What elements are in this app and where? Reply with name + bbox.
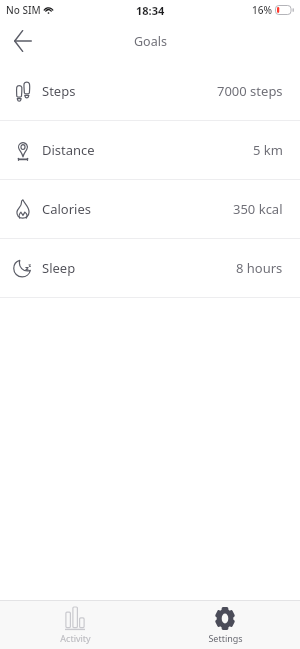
staticText: 350 kcal <box>233 200 283 218</box>
staticText: 18:34 <box>136 3 165 18</box>
button[interactable]: Back <box>4 22 42 60</box>
button[interactable]: Distance <box>0 121 300 179</box>
button[interactable]: Activity <box>0 601 150 649</box>
button[interactable]: Steps <box>0 62 300 120</box>
staticText: Distance <box>42 141 95 159</box>
button[interactable]: Sleep <box>0 239 300 297</box>
staticText: Steps <box>42 82 76 100</box>
staticText: 16% <box>252 3 272 17</box>
staticText: Activity <box>60 632 91 644</box>
staticText: Sleep <box>42 259 76 277</box>
staticText: Settings <box>208 632 243 644</box>
staticText: No SIM <box>6 3 41 17</box>
staticText: 5 km <box>253 141 283 159</box>
button[interactable]: Settings <box>150 601 300 649</box>
staticText: 7000 steps <box>217 82 283 100</box>
button[interactable]: Calories <box>0 180 300 238</box>
staticText: Calories <box>42 200 92 218</box>
staticText: Goals <box>134 33 167 50</box>
staticText: 8 hours <box>236 259 283 277</box>
